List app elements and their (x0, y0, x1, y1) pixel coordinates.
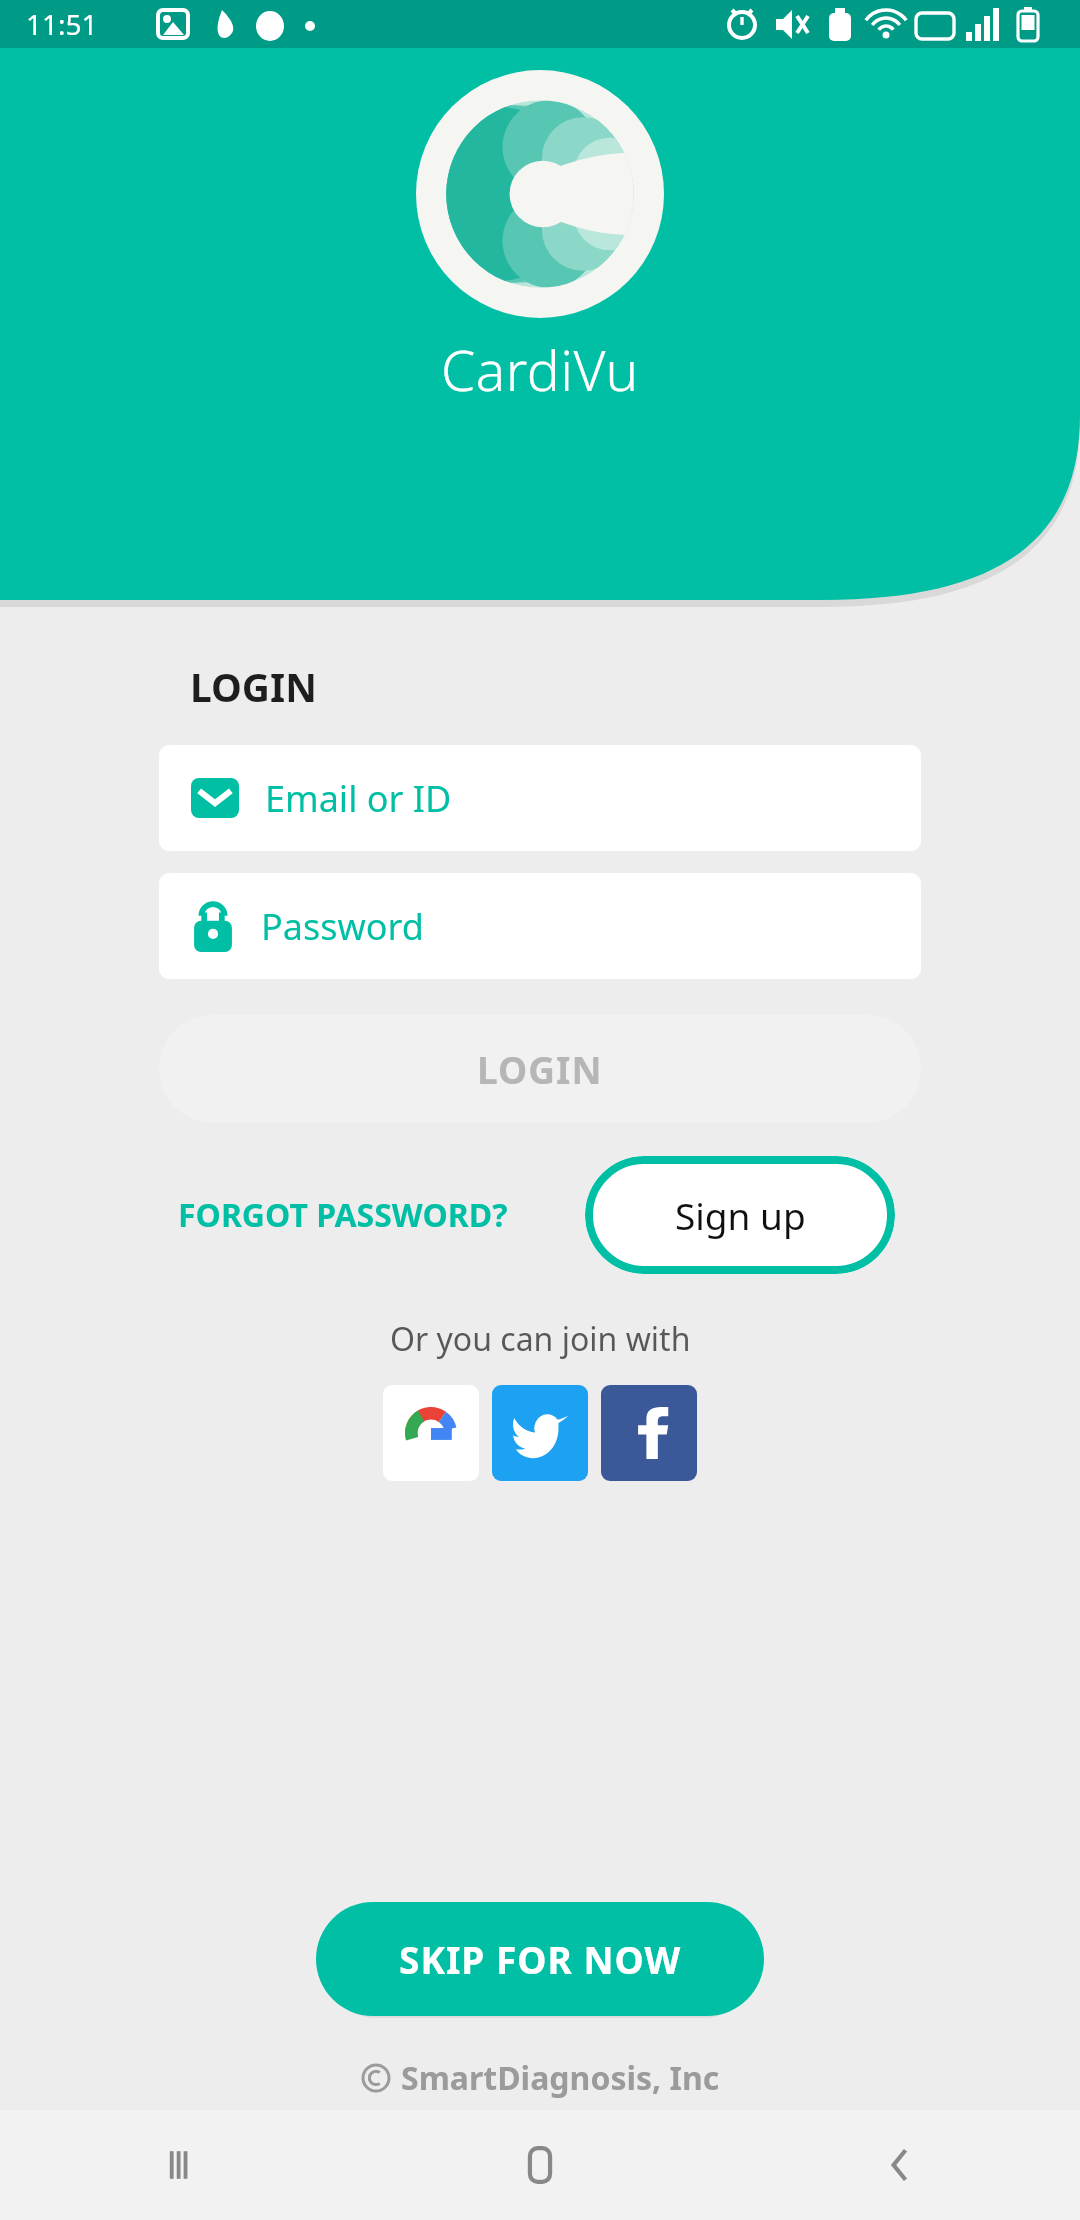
button[interactable]: Back (720, 2110, 1080, 2220)
staticText: 11:51 (26, 5, 98, 43)
staticText: Password (261, 902, 424, 951)
staticText: SmartDiagnosis, Inc (401, 2056, 720, 2100)
staticText: Sign up (675, 1190, 806, 1240)
staticText: Email or ID (265, 774, 452, 823)
staticText: LOGIN (477, 1044, 603, 1094)
button[interactable]: Sign up (585, 1156, 895, 1274)
button[interactable]: SKIP FOR NOW (316, 1902, 764, 2016)
staticText: SKIP FOR NOW (399, 1934, 682, 1984)
button[interactable]: Home (360, 2110, 720, 2220)
button[interactable]: Recents (0, 2110, 360, 2220)
staticText: LOGIN (190, 660, 317, 713)
staticText: FORGOT PASSWORD? (178, 1193, 508, 1237)
button[interactable]: Email or ID (159, 745, 921, 851)
button[interactable]: LOGIN (159, 1015, 921, 1123)
staticText: CardiVu (441, 332, 639, 407)
button[interactable]: Sign in with Facebook (601, 1385, 697, 1481)
button[interactable]: FORGOT PASSWORD? (172, 1177, 514, 1253)
button[interactable]: Sign in with Google (383, 1385, 479, 1481)
staticText: Or you can join with (390, 1317, 691, 1361)
button[interactable]: Sign in with Twitter (492, 1385, 588, 1481)
button[interactable]: Password (159, 873, 921, 979)
